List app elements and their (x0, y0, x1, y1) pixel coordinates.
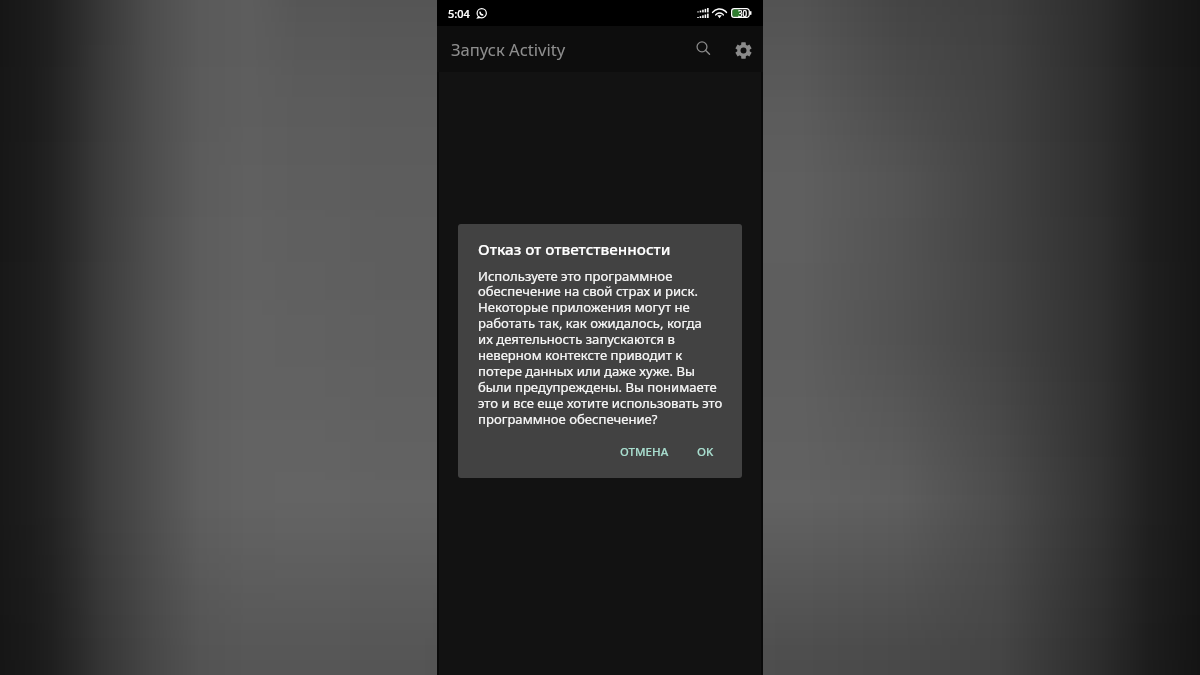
staticText: 30 (738, 8, 748, 18)
staticText: ОТМЕНА (620, 444, 669, 460)
staticText: OK (697, 444, 714, 460)
button[interactable]: OK (689, 438, 722, 466)
staticText: Запуск Activity (451, 38, 566, 61)
button[interactable]: ОТМЕНА (612, 438, 677, 466)
staticText: Используете это программное обеспечение … (478, 267, 723, 428)
staticText: Отказ от ответственности (478, 239, 671, 260)
staticText: 5:04 (448, 6, 470, 21)
button[interactable]: Settings (724, 30, 762, 68)
button[interactable]: Search (686, 30, 724, 68)
